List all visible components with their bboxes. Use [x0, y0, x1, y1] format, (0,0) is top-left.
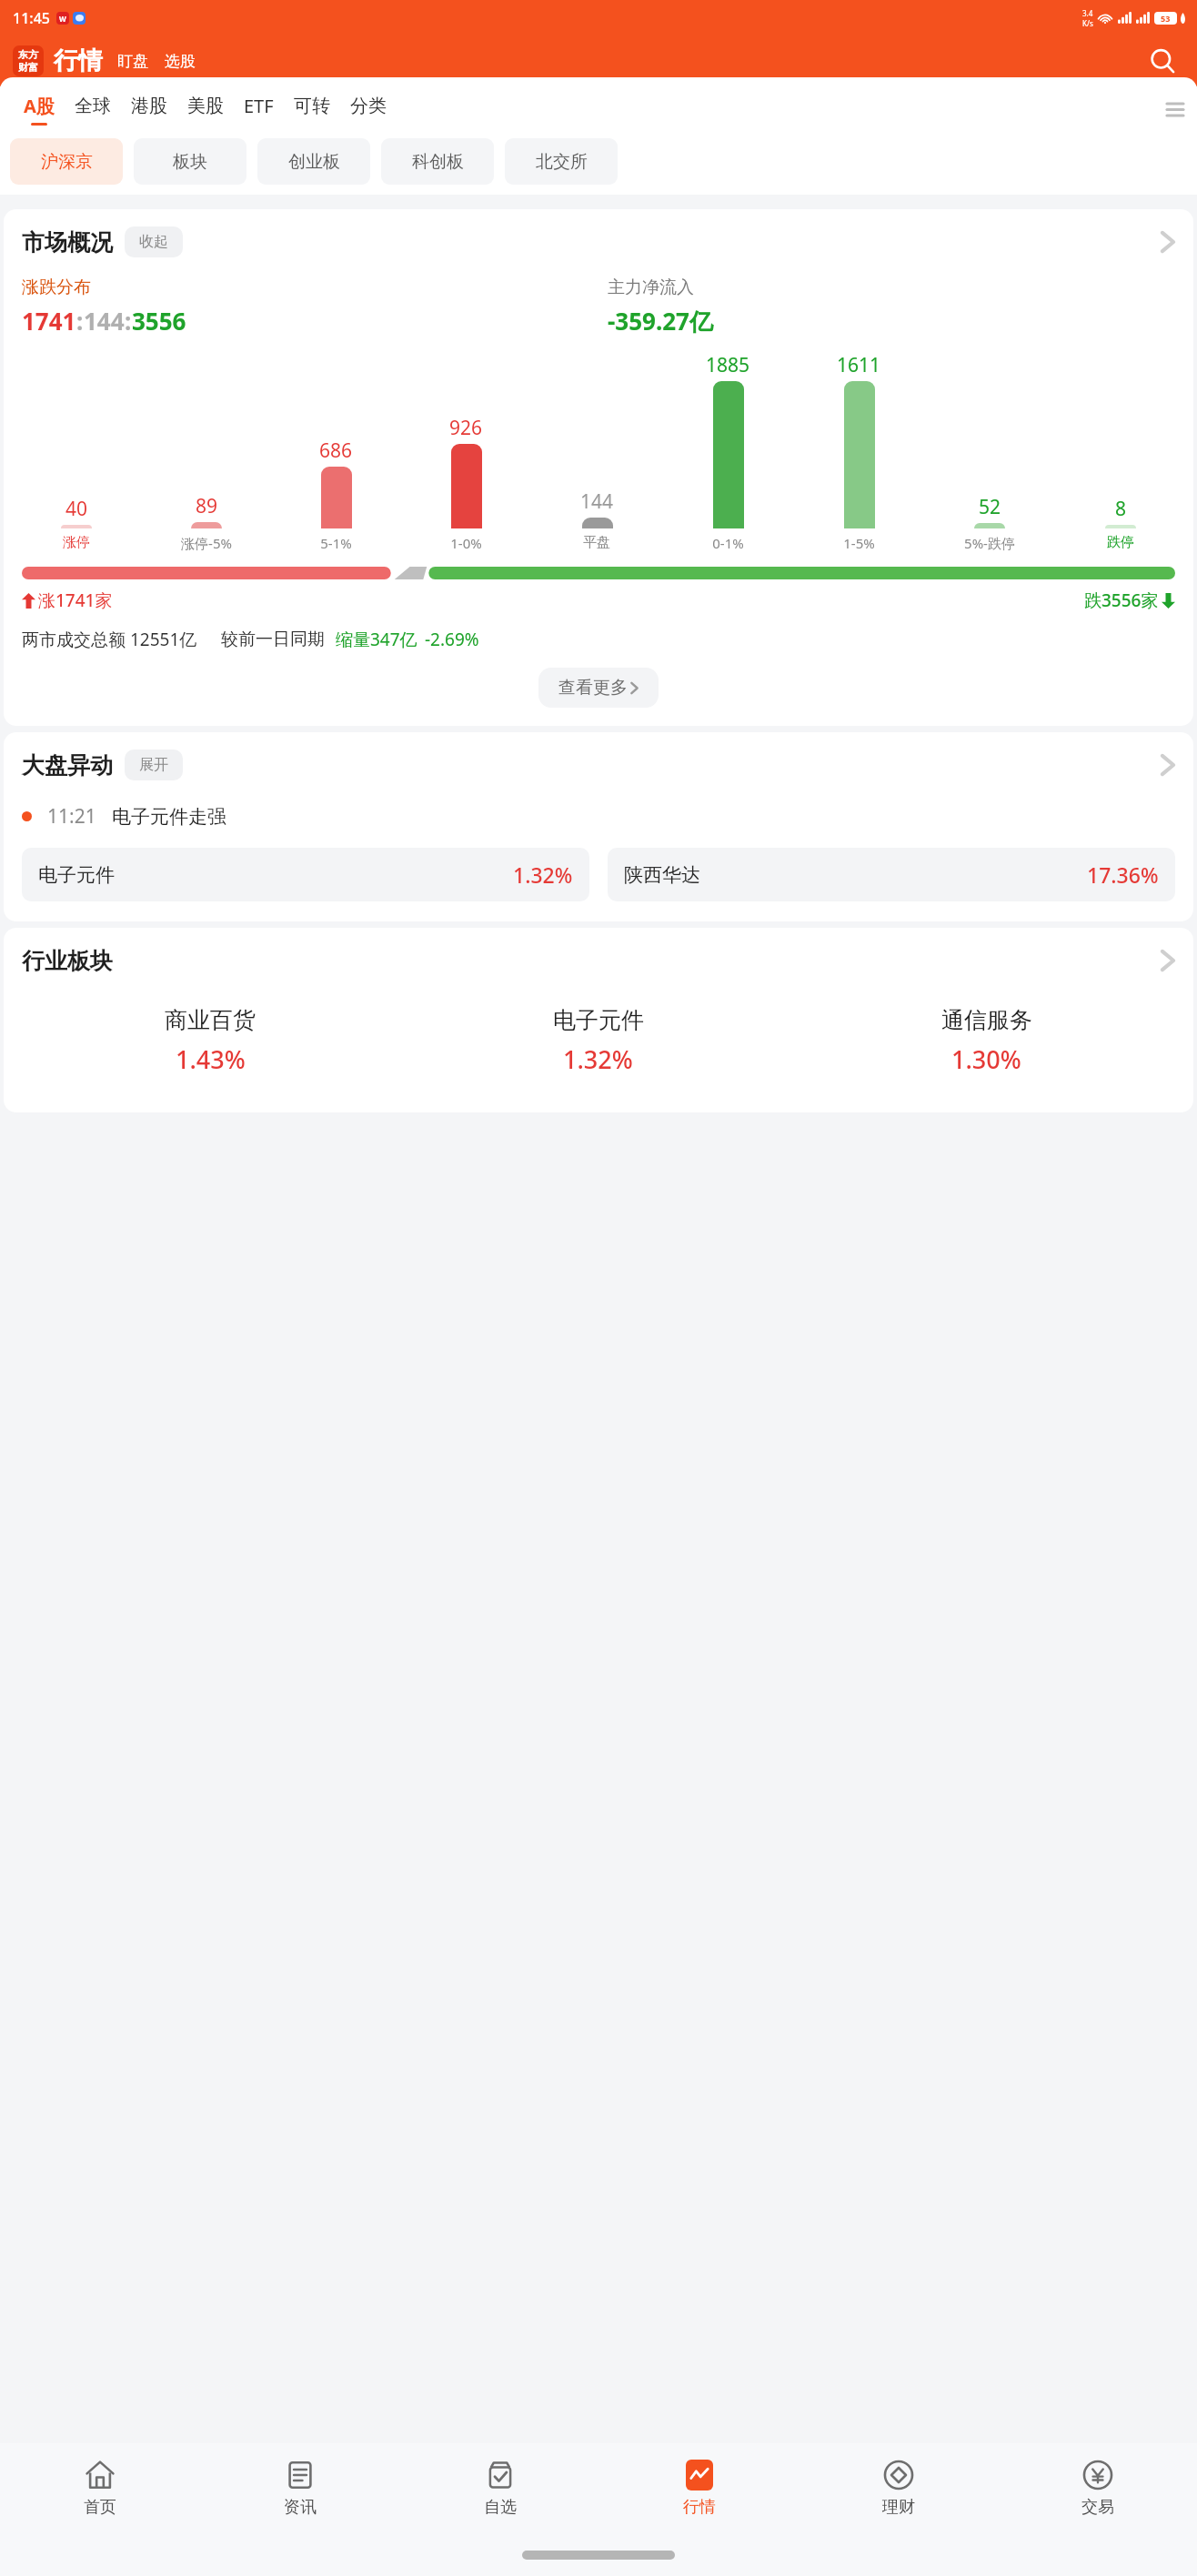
staticText: 北交所 [536, 151, 588, 173]
button[interactable]: ETF [236, 86, 281, 132]
staticText: 11:21 [47, 803, 96, 830]
staticText: 创业板 [288, 151, 340, 173]
staticText: 主力净流入 [608, 277, 694, 298]
staticText: 沪深京 [41, 151, 93, 173]
staticText: 行情 [54, 45, 103, 76]
staticText: 资讯 [284, 2497, 317, 2518]
button[interactable]: 板块 [134, 138, 246, 185]
staticText: 144 [84, 305, 125, 337]
button[interactable]: 11:21 [4, 798, 1193, 835]
staticText: 电子元件 [553, 1006, 644, 1034]
staticText: 展开 [139, 756, 168, 774]
staticText: 财富 [18, 61, 38, 74]
staticText: 平盘 [583, 534, 610, 551]
button[interactable]: 交易 [998, 2443, 1197, 2534]
staticText: 涨停 [63, 534, 90, 551]
button[interactable]: 行情 [599, 2443, 799, 2534]
staticText: 全球 [75, 95, 111, 117]
staticText: 89 [196, 493, 218, 519]
button[interactable]: 科创板 [381, 138, 494, 185]
staticText: 港股 [131, 95, 167, 117]
staticText: 53 [1161, 13, 1171, 24]
button[interactable]: 盯盘 [116, 48, 150, 75]
staticText: 686 [319, 438, 353, 464]
button[interactable]: 查看更多 [538, 668, 659, 708]
button[interactable]: 可转 [287, 86, 337, 132]
staticText: W [59, 14, 66, 24]
staticText: 首页 [84, 2497, 116, 2518]
staticText: 市场概况 [22, 228, 113, 257]
staticText: 美股 [187, 95, 224, 117]
staticText: 1.43% [176, 1042, 246, 1076]
button[interactable]: 陕西华达 [608, 848, 1175, 901]
staticText: 通信服务 [941, 1006, 1032, 1034]
button[interactable]: 展开 [125, 750, 183, 780]
button[interactable]: 通信服务 [792, 1006, 1181, 1076]
button[interactable]: 全球 [67, 86, 118, 132]
staticText: : [125, 305, 132, 337]
staticText: 3556 [132, 305, 186, 337]
button[interactable]: 北交所 [505, 138, 618, 185]
staticText: 1-0% [450, 534, 482, 552]
staticText: 交易 [1081, 2497, 1114, 2518]
staticText: 商业百货 [165, 1006, 256, 1034]
button[interactable]: 分类 [343, 86, 394, 132]
staticText: 40 [65, 496, 88, 522]
staticText: 8 [1115, 496, 1127, 522]
staticText: 涨停-5% [181, 534, 232, 552]
button[interactable]: 选股 [163, 48, 197, 75]
staticText: : [76, 305, 84, 337]
staticText: 东方 [18, 48, 38, 61]
button[interactable]: 市场概况 [4, 209, 1193, 275]
staticText: 3.4 [1082, 8, 1093, 18]
staticText: 盯盘 [117, 52, 148, 71]
button[interactable]: More tabs [1153, 86, 1197, 132]
button[interactable]: Search [1142, 41, 1182, 81]
staticText: 52 [979, 494, 1001, 520]
staticText: 11:45 [13, 8, 50, 28]
staticText: 理财 [882, 2497, 915, 2518]
staticText: 926 [449, 415, 483, 441]
staticText: 涨1741家 [38, 589, 113, 612]
staticText: 跌停 [1107, 534, 1134, 551]
staticText: 1741 [22, 305, 76, 337]
staticText: -359.27亿 [608, 305, 713, 337]
button[interactable]: A股 [16, 86, 62, 132]
staticText: 陕西华达 [624, 863, 700, 887]
button[interactable]: 资讯 [200, 2443, 400, 2534]
staticText: 1.32% [563, 1042, 633, 1076]
staticText: 选股 [165, 52, 196, 71]
staticText: 较前一日同期 [221, 629, 325, 650]
staticText: 缩量347亿 [336, 628, 417, 651]
staticText: 电子元件 [38, 863, 115, 887]
button[interactable]: 电子元件 [404, 1006, 792, 1076]
button[interactable]: 大盘异动 [4, 732, 1193, 798]
button[interactable]: 港股 [124, 86, 175, 132]
staticText: 查看更多 [558, 677, 628, 699]
staticText: 行业板块 [22, 947, 113, 975]
button[interactable]: 自选 [400, 2443, 599, 2534]
staticText: 电子元件走强 [112, 805, 226, 829]
staticText: ETF [244, 94, 274, 118]
staticText: 行情 [683, 2497, 716, 2518]
button[interactable]: 理财 [799, 2443, 998, 2534]
button[interactable]: 电子元件 [22, 848, 589, 901]
staticText: 涨跌分布 [22, 277, 91, 298]
staticText: 1.30% [951, 1042, 1021, 1076]
button[interactable]: 首页 [0, 2443, 200, 2534]
button[interactable]: 行业板块 [4, 928, 1193, 993]
button[interactable]: 收起 [125, 226, 183, 257]
staticText: 0-1% [712, 534, 744, 552]
staticText: 收起 [139, 233, 168, 251]
button[interactable]: 创业板 [257, 138, 370, 185]
button[interactable]: 商业百货 [16, 1006, 404, 1076]
button[interactable]: 美股 [180, 86, 231, 132]
staticText: 可转 [294, 95, 330, 117]
staticText: 1-5% [843, 534, 875, 552]
staticText: -2.69% [425, 628, 479, 651]
button[interactable]: 沪深京 [10, 138, 123, 185]
staticText: 科创板 [412, 151, 464, 173]
staticText: 跌3556家 [1084, 589, 1159, 612]
staticText: 1.32% [513, 860, 573, 889]
staticText: 5-1% [320, 534, 352, 552]
